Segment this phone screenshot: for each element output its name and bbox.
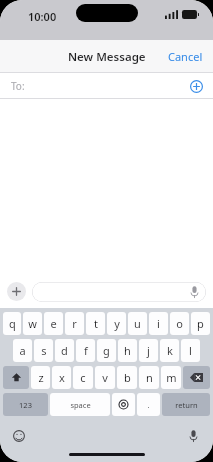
staticText: w [28, 316, 37, 331]
staticText: e [50, 316, 57, 331]
staticText: x [59, 370, 65, 385]
staticText: r [72, 316, 77, 331]
button[interactable]: Add contact [185, 75, 207, 97]
button[interactable]: t [86, 312, 105, 335]
staticText: h [124, 343, 131, 358]
staticText: To: [11, 79, 25, 93]
staticText: y [114, 316, 120, 331]
button[interactable]: c [73, 366, 93, 389]
staticText: o [176, 316, 183, 331]
button[interactable]: . [137, 393, 160, 416]
button[interactable]: Dictation [185, 428, 201, 444]
staticText: m [166, 370, 177, 385]
staticText: v [102, 370, 108, 385]
button[interactable]: u [128, 312, 147, 335]
staticText: s [41, 343, 47, 358]
staticText: l [189, 343, 192, 358]
button[interactable]: v [95, 366, 115, 389]
button[interactable]: Emoji [11, 428, 27, 444]
button[interactable]: n [139, 366, 159, 389]
button[interactable]: At sign [112, 393, 135, 416]
button[interactable]: Cancel [158, 43, 213, 70]
button[interactable]: Backspace [183, 366, 210, 389]
button[interactable]: x [52, 366, 71, 389]
staticText: d [61, 343, 68, 358]
staticText: n [146, 370, 153, 385]
button[interactable]: d [55, 339, 74, 362]
button[interactable]: q [3, 312, 21, 335]
staticText: q [9, 316, 16, 331]
button[interactable]: e [44, 312, 63, 335]
button[interactable]: j [139, 339, 158, 362]
staticText: b [124, 370, 131, 385]
staticText: . [147, 400, 150, 410]
staticText: space [70, 400, 91, 410]
button[interactable]: b [117, 366, 137, 389]
staticText: 123 [19, 400, 32, 410]
button[interactable]: p [191, 312, 210, 335]
staticText: a [19, 343, 26, 358]
button[interactable]: a [13, 339, 32, 362]
staticText: i [157, 316, 160, 331]
button[interactable]: s [34, 339, 53, 362]
button[interactable]: 123 [3, 393, 48, 416]
staticText: z [38, 370, 44, 385]
staticText: New Message [68, 49, 146, 65]
button[interactable]: w [23, 312, 42, 335]
button[interactable]: Shift [3, 366, 29, 389]
staticText: p [197, 316, 204, 331]
button[interactable]: return [162, 393, 210, 416]
button[interactable]: m [161, 366, 181, 389]
button[interactable]: y [107, 312, 126, 335]
staticText: c [80, 370, 86, 385]
button[interactable]: f [76, 339, 95, 362]
staticText: 10:00 [28, 9, 57, 24]
button[interactable] [32, 282, 206, 302]
button[interactable]: l [181, 339, 200, 362]
staticText: f [84, 343, 88, 358]
staticText: k [167, 343, 173, 358]
button[interactable]: o [170, 312, 189, 335]
button[interactable]: h [118, 339, 137, 362]
staticText: return [175, 400, 198, 410]
button[interactable]: i [149, 312, 168, 335]
button[interactable]: z [31, 366, 50, 389]
staticText: j [147, 343, 150, 358]
staticText: g [103, 343, 110, 358]
button[interactable]: k [160, 339, 179, 362]
button[interactable]: space [50, 393, 110, 416]
staticText: u [134, 316, 141, 331]
button[interactable]: Add attachment [7, 282, 26, 301]
button[interactable]: r [65, 312, 84, 335]
staticText: Cancel [168, 49, 203, 64]
button[interactable]: g [97, 339, 116, 362]
staticText: t [94, 316, 98, 331]
